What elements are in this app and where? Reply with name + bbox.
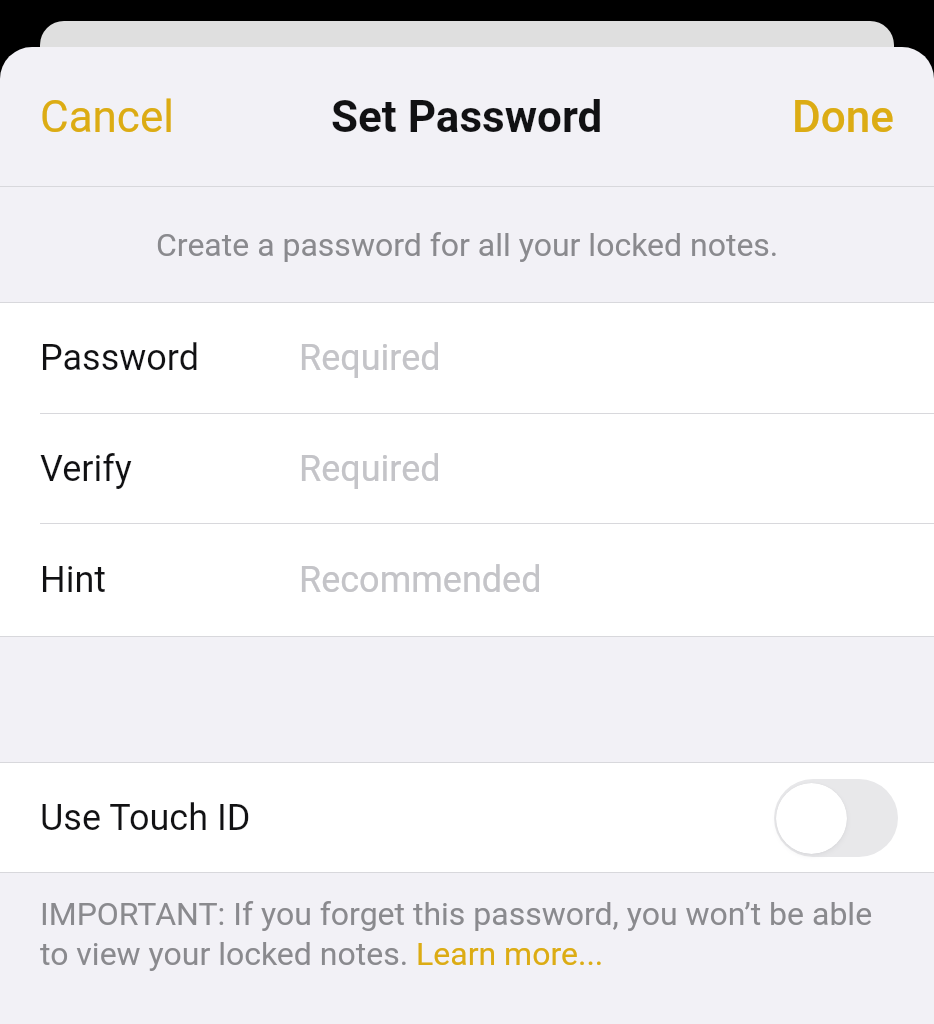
staticText: Recommended: [299, 559, 542, 601]
button[interactable]: Verify: [0, 414, 934, 523]
staticText: Required: [299, 448, 441, 490]
staticText: Create a password for all your locked no…: [156, 226, 779, 264]
staticText: Required: [299, 337, 441, 379]
staticText: Password: [40, 337, 200, 379]
staticText: Done: [792, 91, 894, 143]
staticText: Cancel: [40, 91, 174, 143]
staticText: Hint: [40, 559, 107, 601]
staticText: Set Password: [331, 91, 603, 143]
staticText: Use Touch ID: [40, 797, 251, 839]
button[interactable]: Password: [0, 303, 934, 413]
button[interactable]: Done: [752, 73, 934, 161]
button[interactable]: Use Touch ID toggle: [774, 779, 898, 857]
button[interactable]: Cancel: [0, 73, 214, 161]
staticText: IMPORTANT: If you forget this password, …: [40, 893, 894, 973]
staticText: Verify: [40, 448, 132, 490]
button[interactable]: Use Touch ID: [0, 763, 934, 872]
button[interactable]: Hint: [0, 524, 934, 636]
